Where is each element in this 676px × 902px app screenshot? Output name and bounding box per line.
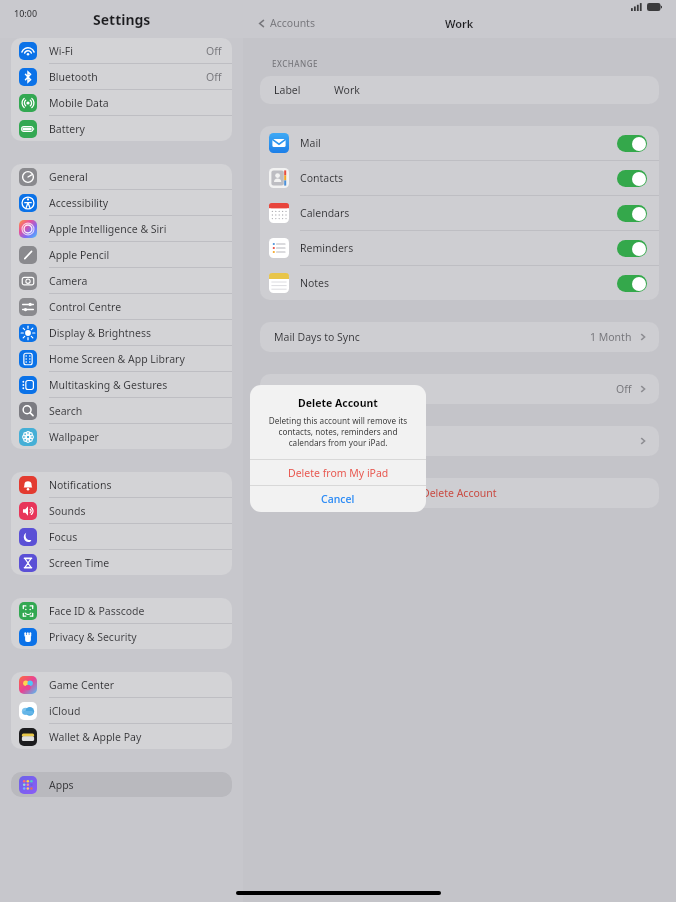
button[interactable]: Game Center: [11, 672, 232, 698]
staticText: Focus: [49, 530, 222, 544]
staticText: EXCHANGE: [272, 58, 318, 69]
staticText: Apps: [49, 778, 222, 792]
button[interactable]: Multitasking & Gestures: [11, 372, 232, 398]
staticText: Bluetooth: [49, 70, 206, 84]
button[interactable]: Label: [274, 76, 645, 104]
button[interactable]: Delete Account: [260, 478, 659, 508]
staticText: Home Screen & App Library: [49, 352, 222, 366]
button[interactable]: Accounts: [257, 16, 315, 30]
button[interactable]: Cancel: [250, 486, 426, 511]
staticText: Wallet & Apple Pay: [49, 730, 222, 744]
staticText: Contacts: [300, 171, 617, 185]
staticText: Work: [334, 83, 360, 97]
staticText: Mobile Data: [49, 96, 222, 110]
button[interactable]: Face ID & Passcode: [11, 598, 232, 624]
button[interactable]: Apple Intelligence & Siri: [11, 216, 232, 242]
staticText: Work: [445, 16, 474, 31]
staticText: Privacy & Security: [49, 630, 222, 644]
staticText: Screen Time: [49, 556, 222, 570]
button[interactable]: Focus: [11, 524, 232, 550]
button[interactable]: Screen Time: [11, 550, 232, 575]
staticText: General: [49, 170, 222, 184]
staticText: Delete Account: [250, 396, 426, 410]
button[interactable]: Contacts: [260, 161, 659, 196]
button[interactable]: Wallpaper: [11, 424, 232, 449]
button[interactable]: Accessibility: [11, 190, 232, 216]
button[interactable]: Delete from My iPad: [250, 460, 426, 485]
staticText: Label: [274, 83, 301, 97]
staticText: Reminders: [300, 241, 617, 255]
staticText: Off: [206, 70, 222, 84]
button[interactable]: Mobile Data: [11, 90, 232, 116]
staticText: Delete Account: [422, 486, 497, 500]
staticText: Wi-Fi: [49, 44, 206, 58]
staticText: Game Center: [49, 678, 222, 692]
staticText: Off: [206, 44, 222, 58]
button[interactable]: Privacy & Security: [11, 624, 232, 649]
staticText: Multitasking & Gestures: [49, 378, 222, 392]
staticText: Settings: [93, 10, 151, 29]
button[interactable]: Wi-Fi: [11, 38, 232, 64]
button[interactable]: Apps: [11, 772, 232, 797]
staticText: Notes: [300, 276, 617, 290]
staticText: Camera: [49, 274, 222, 288]
button[interactable]: Apple Pencil: [11, 242, 232, 268]
staticText: Delete from My iPad: [288, 466, 389, 480]
staticText: 10:00: [14, 7, 38, 19]
staticText: Mail: [300, 136, 617, 150]
button[interactable]: Notifications: [11, 472, 232, 498]
button[interactable]: Control Centre: [11, 294, 232, 320]
button[interactable]: Search: [11, 398, 232, 424]
button[interactable]: Battery: [11, 116, 232, 141]
button[interactable]: Notes: [260, 266, 659, 300]
staticText: Battery: [49, 122, 222, 136]
staticText: 1 Month: [590, 330, 632, 344]
button[interactable]: Camera: [11, 268, 232, 294]
button[interactable]: iCloud: [11, 698, 232, 724]
button[interactable]: Wallet & Apple Pay: [11, 724, 232, 749]
staticText: Cancel: [321, 492, 355, 506]
button[interactable]: Bluetooth: [11, 64, 232, 90]
staticText: Apple Intelligence & Siri: [49, 222, 222, 236]
staticText: Search: [49, 404, 222, 418]
staticText: Notifications: [49, 478, 222, 492]
button[interactable]: Home Screen & App Library: [11, 346, 232, 372]
button[interactable]: Sounds: [11, 498, 232, 524]
staticText: Face ID & Passcode: [49, 604, 222, 618]
button[interactable]: Reminders: [260, 231, 659, 266]
button[interactable]: Mail Days to Sync: [274, 322, 647, 352]
button[interactable]: [274, 426, 647, 456]
staticText: Apple Pencil: [49, 248, 222, 262]
staticText: Control Centre: [49, 300, 222, 314]
button[interactable]: Mail: [260, 126, 659, 161]
staticText: Deleting this account will remove its co…: [261, 415, 415, 448]
staticText: Mail Days to Sync: [274, 330, 360, 344]
staticText: Display & Brightness: [49, 326, 222, 340]
staticText: Accounts: [270, 16, 315, 30]
staticText: Sounds: [49, 504, 222, 518]
button[interactable]: Off: [274, 374, 647, 404]
staticText: iCloud: [49, 704, 222, 718]
staticText: Wallpaper: [49, 430, 222, 444]
staticText: Off: [616, 382, 632, 396]
button[interactable]: Calendars: [260, 196, 659, 231]
button[interactable]: General: [11, 164, 232, 190]
staticText: Calendars: [300, 206, 617, 220]
button[interactable]: Display & Brightness: [11, 320, 232, 346]
staticText: Accessibility: [49, 196, 222, 210]
